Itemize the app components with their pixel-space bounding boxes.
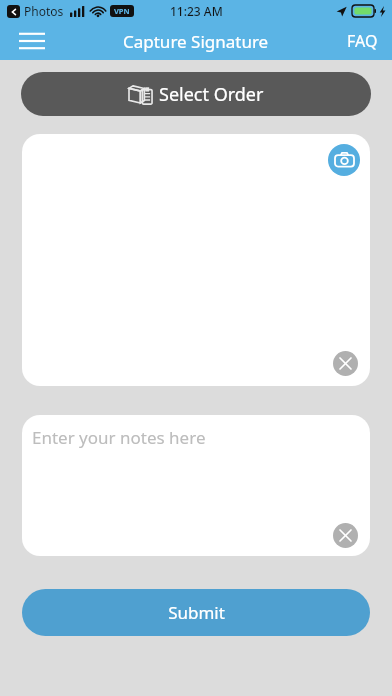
button[interactable]: Clear notes [333, 523, 358, 548]
button[interactable]: Open navigation menu [10, 22, 54, 60]
staticText: Submit [168, 601, 225, 624]
staticText: Select Order [159, 82, 264, 107]
button[interactable]: Select Order [21, 72, 371, 116]
staticText: Capture Signature [123, 30, 269, 53]
staticText: FAQ [347, 30, 378, 52]
staticText: Photos [24, 3, 64, 19]
staticText: VPN [114, 6, 130, 16]
button[interactable]: Clear signature [333, 351, 358, 376]
staticText: Enter your notes here [32, 426, 206, 449]
button[interactable]: Enter your notes here [22, 415, 370, 556]
button[interactable]: Signature capture area [22, 134, 370, 386]
button[interactable]: Submit [22, 589, 370, 636]
button[interactable]: Take photo [328, 144, 360, 176]
button[interactable]: FAQ [341, 24, 384, 58]
staticText: 11:23 AM [170, 3, 223, 19]
